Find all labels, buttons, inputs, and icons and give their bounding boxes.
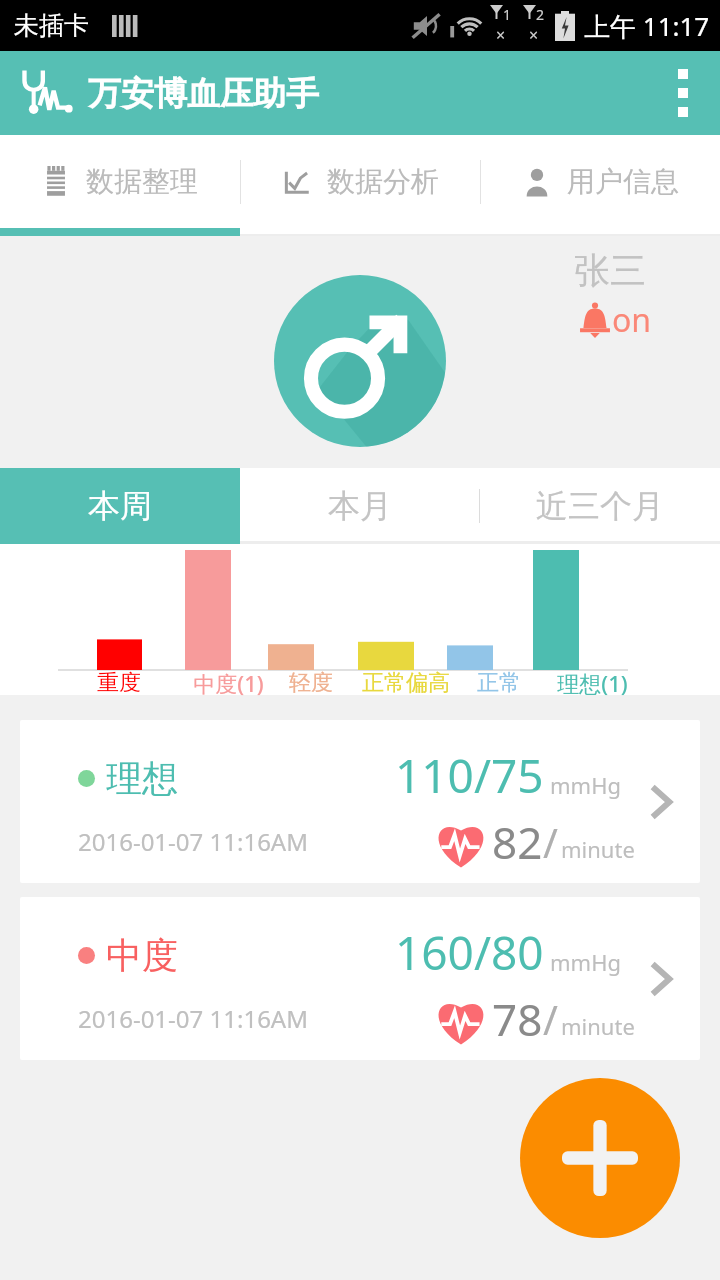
staticText: 理想 [106,756,178,801]
staticText: 2 [536,5,545,24]
button[interactable]: 中度 [20,897,700,1060]
staticText: mmHg [550,770,621,800]
button[interactable]: 用户信息 [481,135,720,228]
button[interactable]: Gender male [274,275,446,447]
staticText: / [543,992,558,1046]
staticText: 本月 [328,486,392,526]
staticText: 张三 [574,248,646,293]
other: Open detail [650,780,672,824]
staticText: 正常 [477,669,521,697]
staticText: / [543,815,558,869]
button[interactable]: 本月 [240,468,479,544]
button[interactable]: 数据分析 [241,135,480,228]
staticText: 正常偏高 [362,669,450,697]
staticText: 中度(1) [193,668,264,698]
other: Open detail [650,957,672,1001]
staticText: 未插卡 [14,10,89,41]
staticText: 用户信息 [567,164,679,199]
staticText: 近三个月 [536,486,664,526]
staticText: 2016-01-07 11:16AM [78,1002,308,1035]
staticText: 万安博血压助手 [88,73,319,115]
staticText: 160/80 [395,921,544,984]
button[interactable]: 本周 [0,468,240,544]
staticText: 理想(1) [557,668,628,698]
staticText: 78 [492,989,543,1049]
staticText: 本周 [88,486,152,526]
button[interactable]: 数据整理 [0,135,240,228]
staticText: 上午 11:17 [584,8,710,44]
staticText: 1 [503,5,512,24]
staticText: mmHg [550,947,621,977]
staticText: minute [561,1011,635,1041]
staticText: 中度 [106,933,178,978]
button[interactable]: 理想 [20,720,700,883]
staticText: minute [561,834,635,864]
staticText: 2016-01-07 11:16AM [78,825,308,858]
staticText: on [612,298,652,342]
staticText: × [496,24,506,46]
button[interactable]: More options [646,51,720,135]
staticText: 轻度 [289,669,333,697]
button[interactable]: Add measurement [520,1078,680,1238]
staticText: × [529,24,539,46]
staticText: 82 [492,812,543,872]
staticText: 数据分析 [327,164,439,199]
button[interactable]: Reminder on [578,298,652,342]
button[interactable]: 近三个月 [480,468,720,544]
staticText: 数据整理 [86,164,198,199]
staticText: 重度 [97,669,141,697]
staticText: 110/75 [395,744,544,807]
